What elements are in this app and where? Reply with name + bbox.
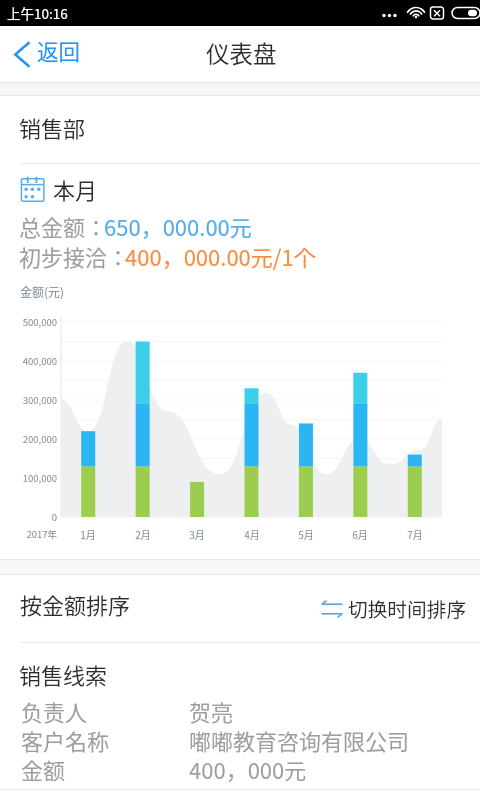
staticText: 负责人 <box>21 695 88 727</box>
staticText: 本月 <box>53 173 98 205</box>
staticText: 500,000 <box>0 315 57 329</box>
staticText: 400，000元 <box>189 753 307 785</box>
staticText: 切换时间排序 <box>348 594 467 623</box>
staticText: 4月 <box>232 527 272 541</box>
other: This month <box>20 174 46 204</box>
staticText: 按金额排序 <box>20 588 131 620</box>
staticText: 1月 <box>68 527 108 541</box>
other: Back <box>14 41 30 68</box>
staticText: 7月 <box>395 527 435 541</box>
staticText: 总金额： <box>19 210 108 242</box>
staticText: 客户名称 <box>21 724 110 756</box>
staticText: 销售线索 <box>19 658 108 690</box>
button[interactable]: Back <box>0 29 97 80</box>
staticText: 200,000 <box>0 432 57 446</box>
staticText: 2月 <box>123 527 163 541</box>
staticText: 金额(元) <box>20 283 65 300</box>
staticText: 返回 <box>37 35 81 66</box>
staticText: 5月 <box>286 527 326 541</box>
staticText: 300,000 <box>0 393 57 407</box>
staticText: 仪表盘 <box>206 36 277 70</box>
staticText: 上午10:16 <box>7 3 68 23</box>
staticText: 100,000 <box>0 471 57 485</box>
staticText: 2017年 <box>14 527 57 541</box>
staticText: 3月 <box>177 527 217 541</box>
staticText: 金额 <box>21 753 66 785</box>
staticText: 0 <box>0 510 57 524</box>
button[interactable]: 销售线索 <box>0 643 480 789</box>
staticText: 初步接洽： <box>19 240 130 272</box>
staticText: 嘟嘟教育咨询有限公司 <box>189 724 410 756</box>
staticText: 销售部 <box>19 111 86 143</box>
staticText: 400，000.00元/1个 <box>125 240 316 272</box>
staticText: 贺亮 <box>189 695 234 727</box>
other: Switch sort order <box>321 602 343 616</box>
staticText: 650，000.00元 <box>104 210 252 242</box>
staticText: 400,000 <box>0 354 57 368</box>
button[interactable]: Switch sort order <box>313 584 477 633</box>
staticText: 6月 <box>340 527 380 541</box>
